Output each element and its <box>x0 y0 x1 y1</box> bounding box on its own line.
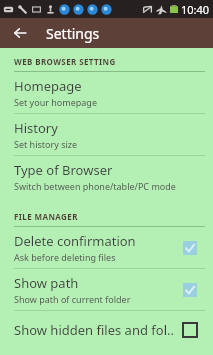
staticText: Settings <box>46 24 100 43</box>
staticText: Delete confirmation <box>14 232 136 250</box>
staticText: Set your homepage <box>14 96 97 108</box>
staticText: 10:40 <box>181 2 210 17</box>
button[interactable]: History <box>0 114 213 155</box>
button[interactable]: Homepage <box>0 72 213 113</box>
button[interactable]: Show path <box>0 269 213 310</box>
staticText: Show path of current folder <box>14 293 131 305</box>
staticText: WEB BROWSER SETTING <box>14 56 116 67</box>
staticText: Set history size <box>14 138 78 150</box>
staticText: History <box>14 119 58 137</box>
staticText: Homepage <box>14 77 82 95</box>
staticText: Type of Browser <box>14 161 113 179</box>
button[interactable]: Back <box>8 21 32 45</box>
staticText: Show hidden files and fol.. <box>14 321 174 339</box>
button[interactable]: Type of Browser <box>0 156 213 197</box>
staticText: Show path <box>14 274 79 292</box>
staticText: Switch between phone/table/PC mode <box>14 180 176 192</box>
staticText: FILE MANAGER <box>14 211 78 222</box>
button[interactable]: Show hidden files and fol.. <box>0 311 213 349</box>
button[interactable]: Delete confirmation <box>0 227 213 268</box>
staticText: Ask before deleting files <box>14 251 116 263</box>
